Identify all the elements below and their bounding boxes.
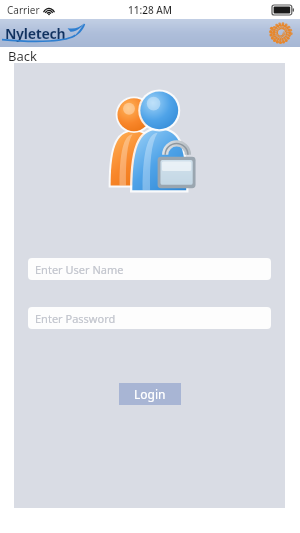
staticText: 11:28 AM bbox=[128, 3, 172, 17]
staticText: Carrier bbox=[7, 3, 40, 17]
button[interactable]: Enter User Name bbox=[28, 258, 271, 280]
button[interactable]: Menu bbox=[270, 22, 292, 44]
button[interactable]: Login bbox=[119, 383, 181, 405]
staticText: Enter Password bbox=[35, 311, 116, 326]
button[interactable]: Nyletech home bbox=[5, 22, 86, 44]
button[interactable]: Enter Password bbox=[28, 307, 271, 329]
staticText: Enter User Name bbox=[35, 262, 124, 277]
staticText: Nyletech bbox=[5, 24, 66, 43]
staticText: Login bbox=[134, 386, 166, 402]
staticText: Back bbox=[8, 47, 37, 63]
button[interactable]: Back bbox=[0, 47, 300, 63]
